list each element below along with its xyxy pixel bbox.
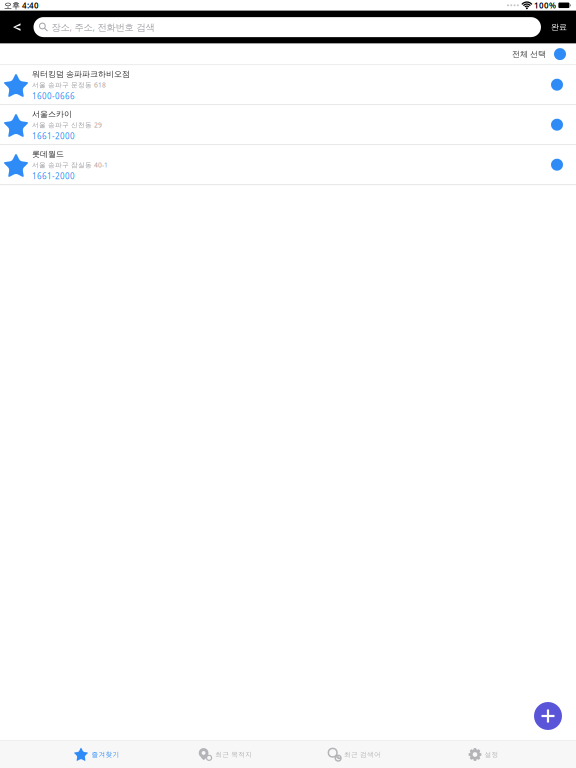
button[interactable]: Add bbox=[528, 696, 568, 736]
button[interactable]: Back bbox=[0, 11, 33, 44]
staticText: 워터킹덤 송파파크하비오점 bbox=[32, 69, 130, 79]
button[interactable]: 롯데월드 bbox=[0, 145, 576, 185]
staticText: 1661-2000 bbox=[32, 131, 75, 141]
staticText: 장소, 주소, 전화번호 검색 bbox=[51, 21, 154, 33]
button[interactable]: 최근 목적지 bbox=[161, 741, 290, 768]
button[interactable]: 즐겨찾기 bbox=[32, 741, 161, 768]
staticText: 전체 선택 bbox=[512, 49, 546, 59]
staticText: 서울 송파구 신천동 29 bbox=[32, 120, 102, 129]
staticText: 최근 목적지 bbox=[215, 750, 252, 759]
button[interactable]: 장소, 주소, 전화번호 검색 bbox=[33, 17, 541, 37]
button[interactable]: 설정 bbox=[419, 741, 548, 768]
staticText: 1600-0666 bbox=[32, 91, 75, 101]
staticText: 최근 검색어 bbox=[344, 750, 381, 759]
button[interactable]: 워터킹덤 송파파크하비오점 bbox=[0, 65, 576, 105]
staticText: 서울 송파구 문정동 618 bbox=[32, 80, 106, 89]
button[interactable]: 서울스카이 bbox=[0, 105, 576, 145]
button[interactable]: 완료 bbox=[541, 11, 576, 44]
staticText: 1661-2000 bbox=[32, 171, 75, 181]
staticText: 서울 송파구 잠실동 40-1 bbox=[32, 160, 108, 169]
staticText: 100% bbox=[534, 0, 556, 11]
button[interactable]: 최근 검색어 bbox=[290, 741, 419, 768]
staticText: 롯데월드 bbox=[32, 149, 64, 159]
staticText: 즐겨찾기 bbox=[91, 750, 119, 759]
staticText: 서울스카이 bbox=[32, 109, 72, 119]
staticText: 오후 4:40 bbox=[4, 0, 39, 11]
staticText: 완료 bbox=[551, 22, 567, 32]
staticText: 설정 bbox=[484, 750, 498, 759]
button[interactable]: 전체 선택 bbox=[0, 44, 576, 65]
